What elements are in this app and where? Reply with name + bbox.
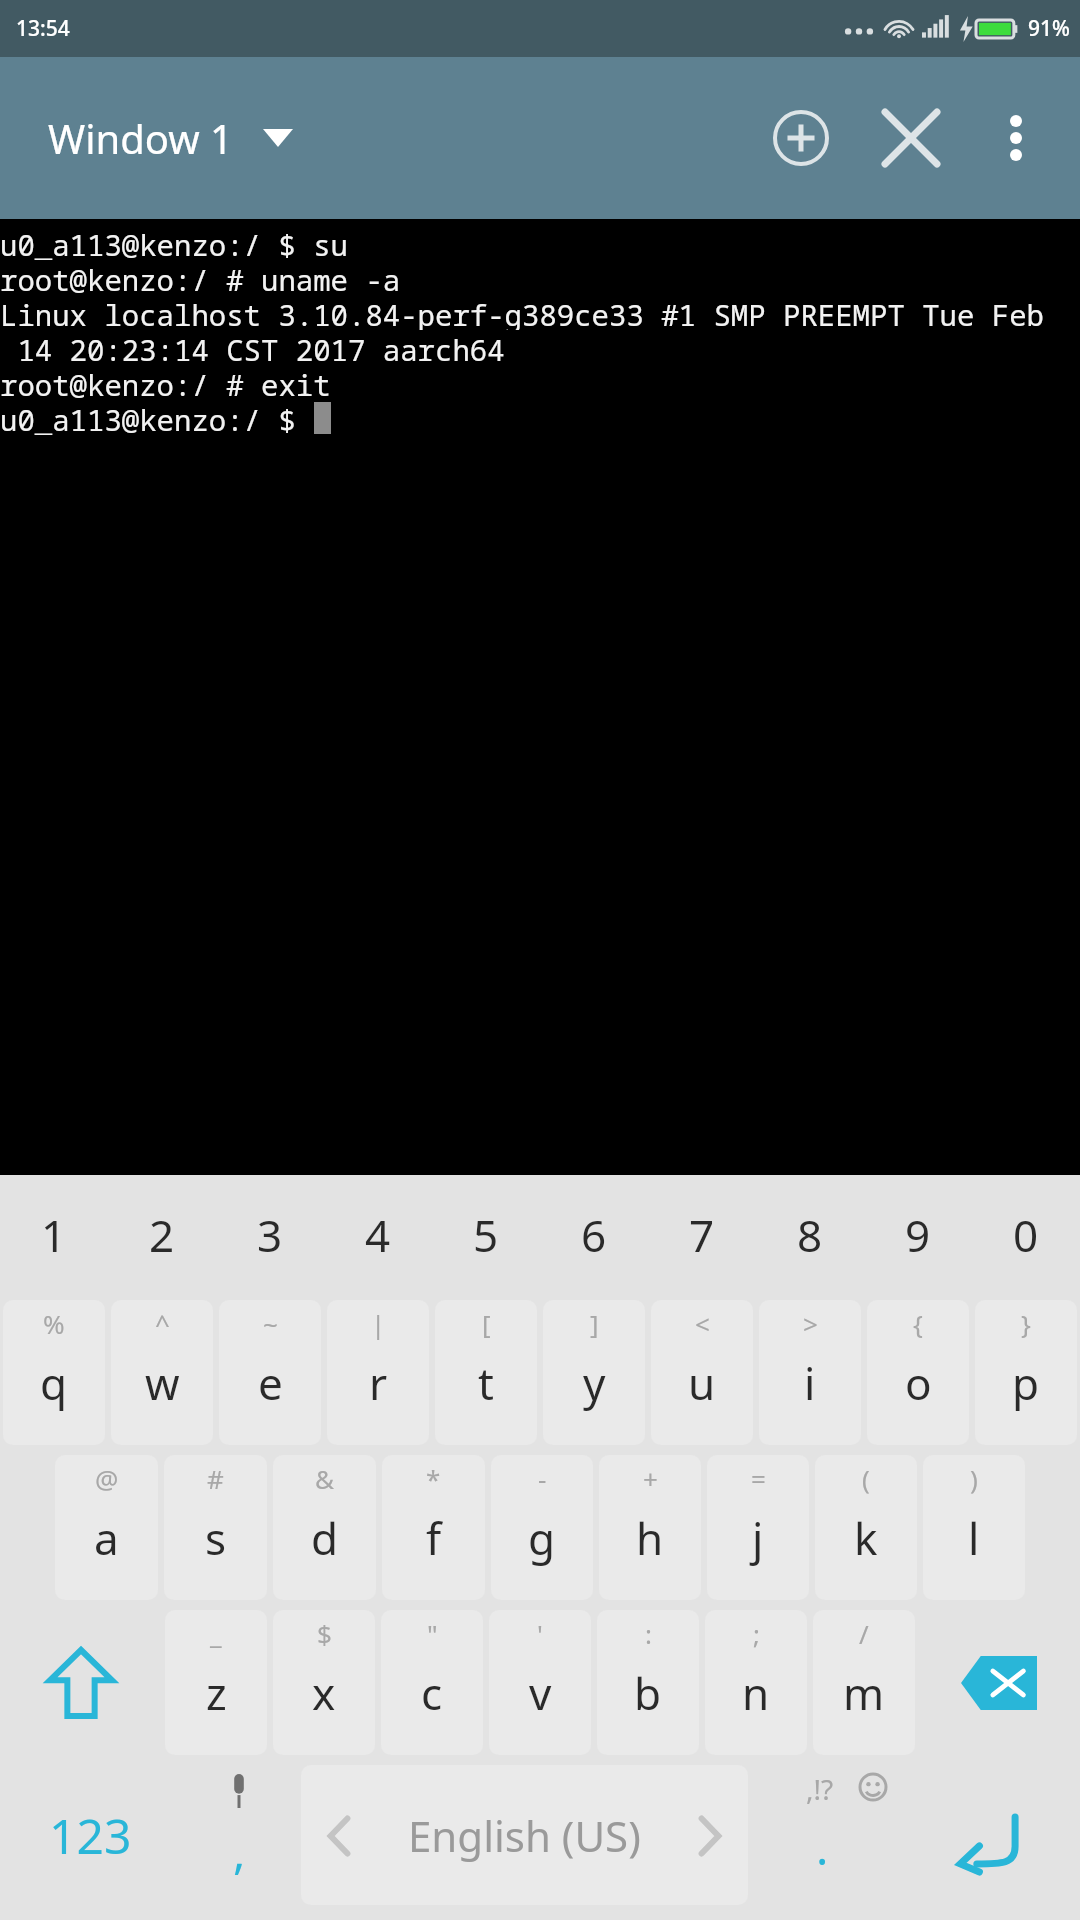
- button[interactable]: (: [815, 1455, 917, 1600]
- staticText: 3: [257, 1205, 283, 1265]
- staticText: /: [859, 1616, 869, 1651]
- staticText: Linux localhost 3.10.84-perf-g389ce33 #1…: [0, 295, 1045, 330]
- button[interactable]: |: [327, 1300, 429, 1445]
- button[interactable]: &: [273, 1455, 376, 1600]
- button[interactable]: _: [165, 1610, 267, 1755]
- button[interactable]: @: [55, 1455, 158, 1600]
- staticText: p: [1012, 1353, 1040, 1413]
- button[interactable]: ": [381, 1610, 483, 1755]
- button[interactable]: ;: [705, 1610, 807, 1755]
- staticText: ^: [155, 1306, 170, 1341]
- button[interactable]: >: [759, 1300, 861, 1445]
- button[interactable]: 0: [972, 1175, 1080, 1295]
- staticText: u: [688, 1353, 716, 1413]
- staticText: e: [258, 1353, 283, 1413]
- button[interactable]: Backspace: [918, 1605, 1080, 1760]
- staticText: &: [315, 1461, 335, 1496]
- staticText: m: [843, 1663, 885, 1723]
- staticText: %: [43, 1306, 65, 1341]
- button[interactable]: Window 1: [0, 111, 313, 165]
- staticText: y: [583, 1353, 606, 1413]
- button[interactable]: ': [489, 1610, 591, 1755]
- staticText: root@kenzo:/ # exit: [0, 365, 331, 400]
- button[interactable]: 7: [648, 1175, 756, 1295]
- button[interactable]: $: [273, 1610, 375, 1755]
- staticText: +: [643, 1461, 658, 1496]
- button[interactable]: Enter: [900, 1760, 1080, 1910]
- staticText: j: [752, 1508, 764, 1568]
- button[interactable]: 3: [216, 1175, 324, 1295]
- staticText: r: [369, 1353, 388, 1413]
- button[interactable]: ): [923, 1455, 1025, 1600]
- staticText: a: [94, 1508, 119, 1568]
- button[interactable]: New window: [746, 83, 856, 193]
- staticText: Window 1: [48, 111, 233, 165]
- staticText: c: [421, 1663, 443, 1723]
- staticText: 91%: [1028, 14, 1070, 43]
- staticText: root@kenzo:/ # uname -a: [0, 260, 401, 295]
- button[interactable]: 8: [756, 1175, 864, 1295]
- staticText: ~: [263, 1306, 278, 1341]
- staticText: $: [317, 1616, 332, 1651]
- button[interactable]: Close window: [856, 83, 966, 193]
- button[interactable]: ]: [543, 1300, 645, 1445]
- staticText: |: [371, 1306, 386, 1341]
- staticText: 4: [365, 1205, 391, 1265]
- button[interactable]: [: [435, 1300, 537, 1445]
- button[interactable]: =: [707, 1455, 809, 1600]
- button[interactable]: -: [491, 1455, 593, 1600]
- button[interactable]: Period, symbols: [752, 1760, 900, 1910]
- staticText: k: [854, 1508, 878, 1568]
- button[interactable]: Space, English (US): [301, 1765, 748, 1905]
- button[interactable]: 1: [0, 1175, 108, 1295]
- staticText: _: [210, 1616, 222, 1651]
- staticText: ): [970, 1461, 978, 1496]
- staticText: {: [913, 1306, 923, 1341]
- staticText: @: [95, 1461, 119, 1496]
- staticText: n: [742, 1663, 770, 1723]
- button[interactable]: }: [975, 1300, 1077, 1445]
- staticText: 6: [581, 1205, 607, 1265]
- button[interactable]: 6: [540, 1175, 648, 1295]
- button[interactable]: #: [164, 1455, 267, 1600]
- staticText: -: [538, 1461, 547, 1496]
- button[interactable]: {: [867, 1300, 969, 1445]
- button[interactable]: 2: [108, 1175, 216, 1295]
- button[interactable]: ^: [111, 1300, 213, 1445]
- button[interactable]: +: [599, 1455, 701, 1600]
- staticText: g: [528, 1508, 556, 1568]
- staticText: 123: [49, 1803, 132, 1868]
- button[interactable]: :: [597, 1610, 699, 1755]
- staticText: [: [482, 1306, 491, 1341]
- button[interactable]: u0_a113@kenzo:/ $ su: [0, 219, 1080, 1175]
- button[interactable]: 5: [432, 1175, 540, 1295]
- button[interactable]: <: [651, 1300, 753, 1445]
- button[interactable]: 9: [864, 1175, 972, 1295]
- staticText: z: [206, 1663, 227, 1723]
- staticText: *: [426, 1461, 441, 1496]
- staticText: s: [205, 1508, 227, 1568]
- button[interactable]: Comma, voice input: [181, 1760, 297, 1910]
- staticText: ": [427, 1616, 438, 1651]
- button[interactable]: /: [813, 1610, 915, 1755]
- staticText: v: [529, 1663, 552, 1723]
- button[interactable]: 123: [0, 1760, 181, 1910]
- button[interactable]: 4: [324, 1175, 432, 1295]
- staticText: q: [40, 1353, 68, 1413]
- button[interactable]: ~: [219, 1300, 321, 1445]
- staticText: 1: [41, 1205, 67, 1265]
- staticText: (: [862, 1461, 870, 1496]
- button[interactable]: Shift: [0, 1605, 162, 1760]
- staticText: ,!?: [806, 1770, 834, 1808]
- staticText: 2: [149, 1205, 175, 1265]
- staticText: 0: [1013, 1205, 1039, 1265]
- staticText: :: [645, 1616, 652, 1651]
- button[interactable]: More options: [966, 88, 1066, 188]
- staticText: t: [478, 1353, 494, 1413]
- staticText: w: [145, 1353, 180, 1413]
- staticText: 5: [473, 1205, 499, 1265]
- button[interactable]: %: [3, 1300, 105, 1445]
- staticText: d: [311, 1508, 339, 1568]
- staticText: l: [968, 1508, 980, 1568]
- button[interactable]: *: [382, 1455, 485, 1600]
